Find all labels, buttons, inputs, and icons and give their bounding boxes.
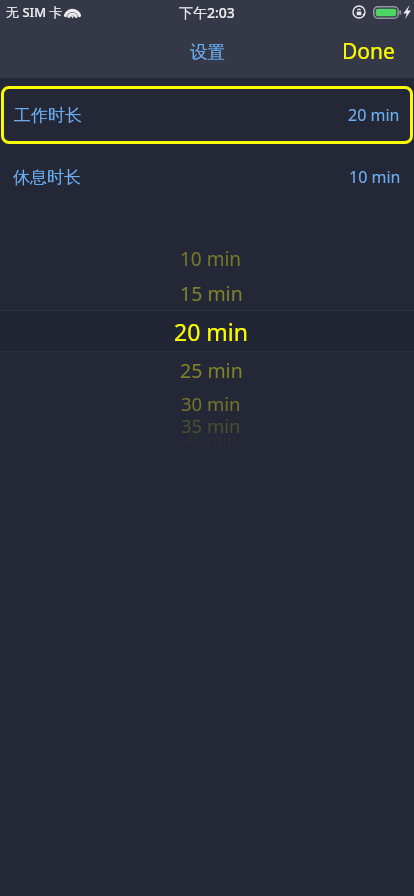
staticText: 20 min: [174, 316, 248, 347]
staticText: 30 min: [181, 391, 241, 416]
staticText: 10 min: [349, 166, 401, 188]
staticText: 20 min: [348, 104, 400, 126]
button[interactable]: 20 min: [0, 310, 414, 352]
staticText: 10 min: [180, 246, 242, 272]
staticText: 休息时长: [13, 167, 81, 188]
button[interactable]: 工作时长: [1, 86, 413, 144]
button[interactable]: Done: [327, 28, 414, 74]
staticText: 工作时长: [14, 105, 82, 126]
staticText: 无 SIM 卡: [6, 3, 63, 21]
staticText: 35 min: [181, 413, 241, 438]
staticText: Done: [342, 37, 395, 66]
staticText: 40 min: [185, 429, 237, 451]
staticText: 下午2:03: [179, 3, 235, 22]
button[interactable]: 休息时长: [0, 148, 414, 206]
staticText: 25 min: [180, 357, 243, 384]
staticText: 设置: [190, 41, 225, 63]
staticText: 15 min: [180, 280, 243, 307]
